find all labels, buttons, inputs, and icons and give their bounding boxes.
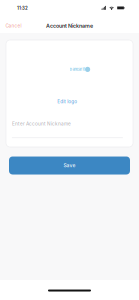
button[interactable]: Save	[9, 156, 130, 174]
staticText: Enter Account Nickname	[12, 121, 71, 127]
button[interactable]: Edit logo	[52, 96, 82, 107]
staticText: Edit logo	[57, 99, 77, 104]
staticText: Cancel	[5, 23, 21, 29]
button[interactable]: Cancel	[0, 19, 27, 33]
staticText: bancarit	[69, 67, 84, 72]
staticText: 11:32	[17, 6, 28, 11]
staticText: Account Nickname	[46, 23, 93, 29]
staticText: Save	[63, 162, 75, 168]
